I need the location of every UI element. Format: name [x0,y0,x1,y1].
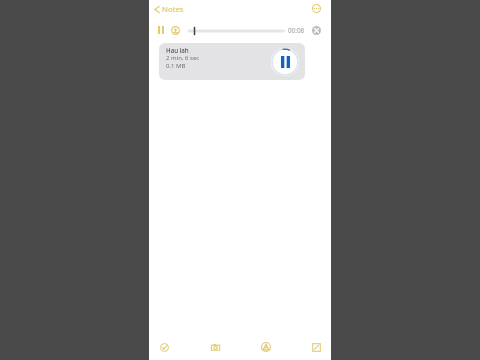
staticText: 0.1 MB [166,62,186,70]
staticText: Hau lah [166,46,189,54]
button[interactable]: Camera [201,334,229,360]
button[interactable]: Close player [311,25,322,36]
button[interactable]: Pause playback [271,48,299,76]
staticText: 00:08 [288,26,305,35]
button[interactable]: Pause [155,24,167,36]
button[interactable]: Hau lah [159,43,305,80]
button[interactable]: New note [302,334,330,360]
button[interactable]: More options [310,2,323,15]
button[interactable]: Seek bar [188,26,285,36]
staticText: Notes [162,4,184,15]
button[interactable]: Tasks [150,334,178,360]
button[interactable]: Notes [153,2,184,17]
button[interactable]: Audio output [169,24,182,37]
staticText: 2 min, 6 sec [166,54,200,62]
button[interactable]: Record [252,334,280,360]
